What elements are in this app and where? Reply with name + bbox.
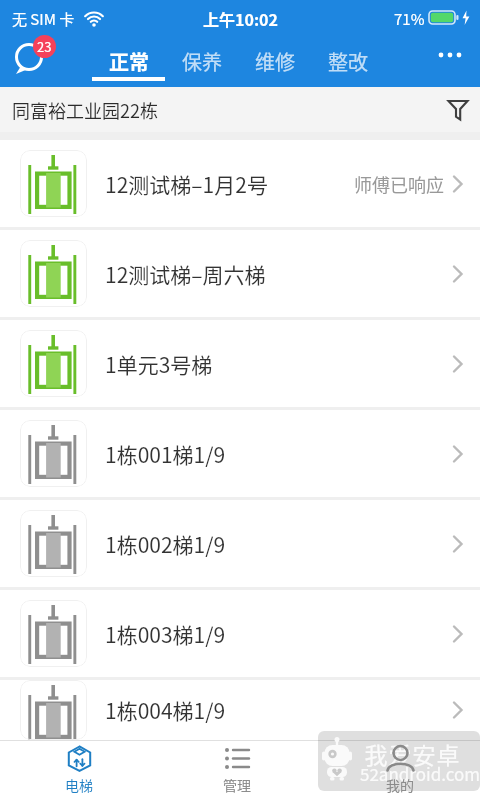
staticText: 1栋001梯1/9 (105, 439, 226, 469)
staticText: 23 (37, 37, 52, 56)
staticText: 同富裕工业园22栋 (12, 97, 158, 123)
button[interactable]: 维修 (238, 36, 312, 87)
staticText: 1单元3号梯 (105, 349, 213, 379)
button[interactable] (6, 36, 68, 87)
button[interactable]: 1栋004梯1/9 (0, 680, 480, 740)
button[interactable]: 12测试梯–周六梯 (0, 230, 480, 317)
staticText: 上午10:02 (203, 7, 278, 30)
button[interactable]: 1栋003梯1/9 (0, 590, 480, 677)
staticText: 1栋004梯1/9 (105, 695, 226, 725)
staticText: 维修 (255, 47, 295, 76)
button[interactable]: 管理 (187, 740, 287, 800)
button[interactable] (430, 36, 470, 87)
staticText: 管理 (223, 775, 251, 795)
staticText: 我爱安卓 (364, 737, 460, 770)
button[interactable]: 1栋002梯1/9 (0, 500, 480, 587)
staticText: 12测试梯–1月2号 (105, 169, 268, 199)
staticText: 12测试梯–周六梯 (105, 259, 266, 289)
staticText: 1栋003梯1/9 (105, 619, 226, 649)
staticText: 我的 (386, 775, 414, 795)
staticText: 71% (394, 8, 425, 30)
button[interactable]: 整改 (311, 36, 385, 87)
button[interactable]: 电梯 (29, 740, 129, 800)
button[interactable]: 我的 (350, 740, 450, 800)
button[interactable]: 1单元3号梯 (0, 320, 480, 407)
button[interactable]: 正常 (92, 36, 166, 87)
button[interactable] (435, 87, 480, 132)
staticText: 保养 (182, 47, 222, 76)
button[interactable]: 保养 (165, 36, 239, 87)
button[interactable]: 12测试梯–1月2号 (0, 140, 480, 227)
staticText: 无 SIM 卡 (12, 8, 75, 30)
button[interactable]: 1栋001梯1/9 (0, 410, 480, 497)
staticText: 整改 (328, 47, 368, 76)
staticText: 正常 (109, 47, 149, 76)
staticText: 电梯 (65, 775, 93, 795)
staticText: 1栋002梯1/9 (105, 529, 226, 559)
staticText: 师傅已响应 (354, 171, 444, 197)
staticText: 52android.com (360, 761, 480, 786)
